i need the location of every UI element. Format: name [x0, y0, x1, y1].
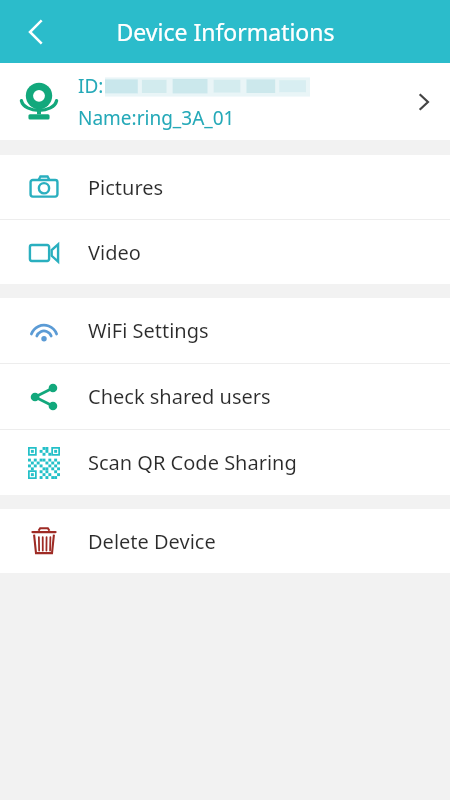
button[interactable]: Video	[0, 220, 450, 284]
staticText: Video	[88, 239, 141, 266]
button[interactable]: WiFi Settings	[0, 298, 450, 363]
button[interactable]: Scan QR Code Sharing	[0, 430, 450, 495]
staticText: WiFi Settings	[88, 317, 209, 344]
button[interactable]: ID:	[0, 63, 450, 140]
staticText: Check shared users	[88, 383, 271, 410]
staticText: Pictures	[88, 174, 164, 201]
staticText: Name:ring_3A_01	[78, 105, 235, 131]
staticText: Delete Device	[88, 528, 216, 555]
other: Open device details	[398, 63, 450, 140]
button[interactable]: Pictures	[0, 155, 450, 219]
staticText: ID:	[78, 73, 104, 99]
button[interactable]: Check shared users	[0, 364, 450, 429]
staticText: Device Informations	[116, 16, 335, 47]
button[interactable]: Back	[10, 6, 62, 58]
staticText: Scan QR Code Sharing	[88, 449, 297, 476]
button[interactable]: Delete Device	[0, 509, 450, 573]
